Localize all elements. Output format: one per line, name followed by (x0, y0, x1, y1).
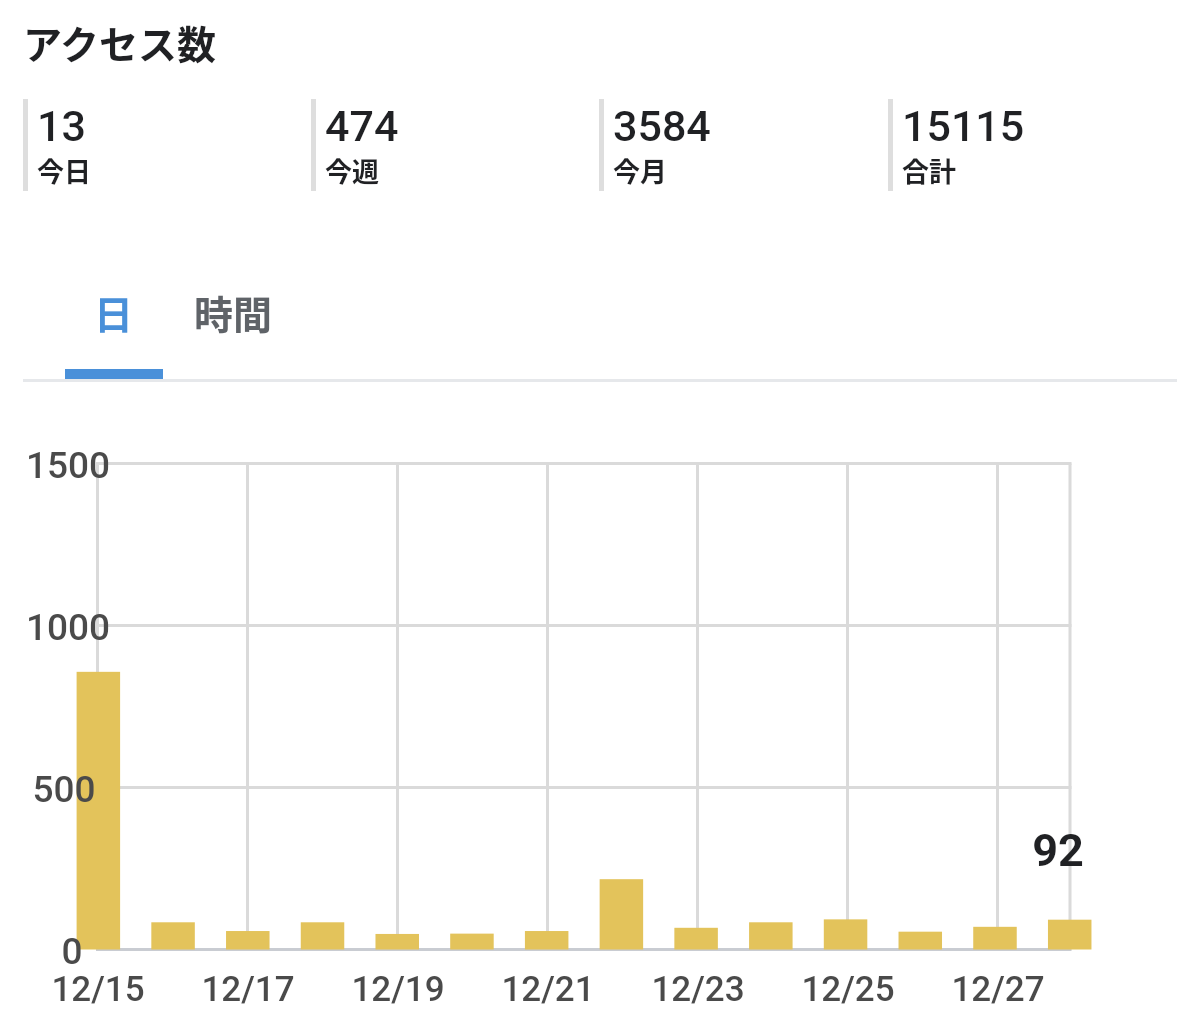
button[interactable]: 13 (23, 99, 311, 191)
staticText: 12/19 (308, 969, 488, 1010)
button[interactable]: 15115 (888, 99, 1177, 191)
staticText: 13 (37, 101, 86, 151)
button[interactable]: 日 (65, 257, 163, 367)
staticText: 15115 (902, 101, 1025, 151)
staticText: 1500 (0, 444, 168, 487)
staticText: 1000 (0, 606, 168, 649)
staticText: 今日 (37, 151, 91, 190)
button[interactable]: 3584 (599, 99, 888, 191)
staticText: 今週 (325, 151, 379, 190)
staticText: 12/25 (758, 969, 938, 1010)
staticText: 日 (94, 284, 134, 340)
staticText: アクセス数 (23, 14, 217, 70)
button[interactable]: 時間 (163, 257, 303, 367)
staticText: 合計 (902, 151, 956, 190)
staticText: 12/23 (608, 969, 788, 1010)
staticText: 12/27 (908, 969, 1088, 1010)
staticText: 12/15 (8, 969, 188, 1010)
staticText: 0 (0, 930, 172, 973)
staticText: 12/17 (158, 969, 338, 1010)
staticText: 今月 (613, 151, 667, 190)
button[interactable]: 474 (311, 99, 599, 191)
staticText: 3584 (613, 101, 711, 151)
staticText: 12/21 (458, 969, 638, 1010)
staticText: 92 (968, 824, 1148, 877)
staticText: 500 (0, 768, 164, 811)
staticText: 時間 (194, 284, 273, 340)
staticText: 474 (325, 101, 399, 151)
other: Daily access bar chart (0, 0, 1200, 1036)
